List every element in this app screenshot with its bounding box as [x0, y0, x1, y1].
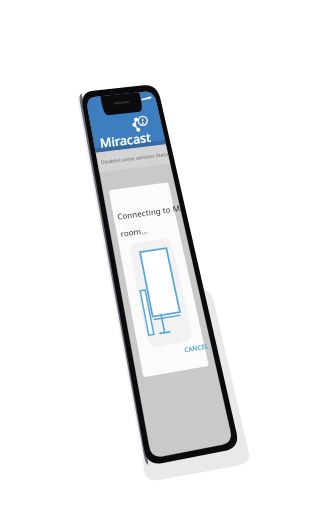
button[interactable]: Miracast connecting screen device mockup — [0, 0, 322, 512]
